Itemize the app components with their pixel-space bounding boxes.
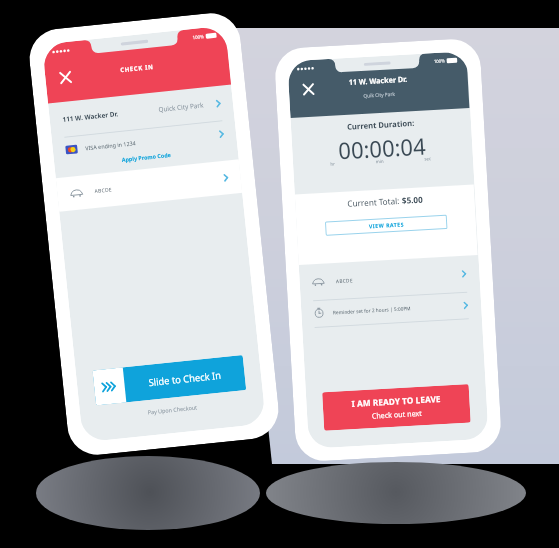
staticText: Check out next <box>371 408 422 421</box>
staticText: VIEW RATES <box>369 220 404 230</box>
button[interactable]: VIEW RATES <box>325 215 447 236</box>
staticText: min <box>375 158 384 164</box>
button[interactable]: 111 W. Wacker Dr. <box>61 86 222 137</box>
button[interactable]: Slide to Check In <box>92 355 246 406</box>
button[interactable]: Apply Promo Code <box>54 144 238 170</box>
button[interactable]: ABCDE <box>311 256 467 300</box>
staticText: Pay Upon Checkout <box>80 396 264 423</box>
staticText: Reminder set for 2 hours | 5:00PM <box>333 305 411 316</box>
staticText: VISA ending in 1234 <box>85 139 136 152</box>
staticText: hr <box>330 161 335 167</box>
staticText: I AM READY TO LEAVE <box>351 393 441 409</box>
button[interactable]: ABCDE <box>68 160 230 210</box>
staticText: $5.00 <box>401 194 423 206</box>
staticText: Quick City Park <box>158 100 204 114</box>
button[interactable]: Close <box>297 77 320 101</box>
button[interactable]: VISA ending in 1234 <box>64 120 225 163</box>
staticText: CHECK IN <box>120 62 154 74</box>
button[interactable]: I AM READY TO LEAVE <box>322 384 471 431</box>
staticText: Current Total: <box>347 195 402 209</box>
staticText: Current Duration: <box>291 114 470 135</box>
staticText: sec <box>424 155 431 161</box>
staticText: 00:00:04 <box>292 128 472 169</box>
button[interactable]: Reminder set for 2 hours | 5:00PM <box>313 292 469 327</box>
staticText: Quik City Park <box>363 90 395 99</box>
staticText: 100% <box>434 57 445 64</box>
staticText: 11 W. Wacker Dr. <box>348 74 408 87</box>
staticText: Slide to Check In <box>148 369 222 389</box>
staticText: 111 W. Wacker Dr. <box>62 109 119 124</box>
staticText: ABCDE <box>336 277 353 285</box>
staticText: ABCDE <box>94 186 113 195</box>
button[interactable]: Close <box>53 65 78 90</box>
staticText: 100% <box>192 33 204 40</box>
